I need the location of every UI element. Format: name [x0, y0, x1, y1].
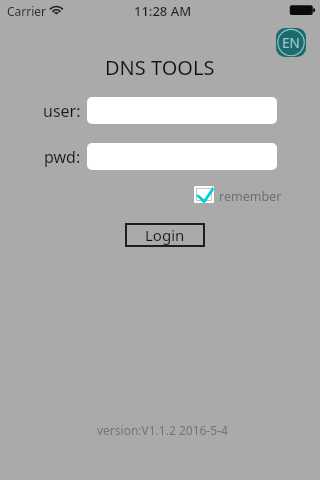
button[interactable]: Login: [125, 223, 205, 247]
button[interactable]: pwd:: [87, 143, 277, 170]
staticText: user:: [43, 100, 81, 122]
button[interactable]: Switch language, English: [276, 28, 306, 57]
button[interactable]: user:: [87, 97, 277, 124]
other: Battery full: [289, 5, 315, 16]
staticText: EN: [282, 34, 300, 52]
staticText: 11:28 AM: [134, 2, 192, 20]
staticText: version:V1.1.2 2016-5-4: [97, 422, 228, 438]
staticText: Login: [145, 225, 185, 245]
other: Wi-Fi signal: [48, 4, 65, 17]
staticText: Carrier: [7, 3, 47, 19]
button[interactable]: remember: [194, 186, 282, 203]
staticText: pwd:: [44, 146, 81, 168]
staticText: DNS TOOLS: [105, 54, 215, 81]
staticText: remember: [219, 188, 282, 205]
